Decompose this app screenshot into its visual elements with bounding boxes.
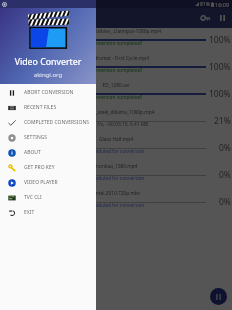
button[interactable] [0,0,232,310]
button[interactable]: ABOUT [0,145,96,160]
button[interactable]: GET PRO KEY [0,160,96,175]
button[interactable]: Amigos Invisibles_ Llamigos-1080p.mp4 [0,28,232,55]
staticText: tears_of_steel_dillama_1080p.mp4 [0,109,232,116]
staticText: 0% [219,196,231,208]
staticText: Scheduled for conversion [0,148,232,155]
staticText: GET PRO KEY [24,164,55,171]
staticText: ABORT CONVERSION [24,89,74,96]
staticText: RECENT FILES [24,104,57,111]
staticText: VIDEO PLAYER [24,179,58,186]
staticText: ED_1280.avi [0,82,232,89]
button[interactable]: ABORT CONVERSION [0,85,96,100]
button[interactable]: COMPLETED CONVERSIONS [0,115,96,130]
staticText: 100% [209,61,231,73]
staticText: 16:09 [215,1,230,8]
staticText: EXIT [24,209,35,216]
button[interactable]: monkaa_1080.mp4 [0,163,232,190]
button[interactable]: TVC CLI [0,190,96,205]
staticText: 0% [219,169,231,181]
staticText: Video Converter [0,56,96,68]
button[interactable]: Get pro key [196,8,214,28]
staticText: Sintel.2010.720p.mkv [0,190,232,197]
button[interactable]: VIDEO PLAYER [0,175,96,190]
button[interactable]: Laundromat - First Cycle.mp4 [0,55,232,82]
staticText: 0% [219,142,231,154]
staticText: COMPLETED CONVERSIONS [24,119,89,126]
button[interactable]: EXIT [0,205,96,220]
button[interactable]: RECENT FILES [0,100,96,115]
staticText: akingi.org [0,71,96,79]
staticText: 21% [214,115,231,127]
staticText: monkaa_1080.mp4 [0,163,232,170]
staticText: Conversion completed! [0,40,232,47]
staticText: 100% [209,88,231,100]
button[interactable]: SETTINGS [0,130,96,145]
staticText: Conversion completed! [0,67,232,74]
button[interactable]: tears_of_steel_dillama_1080p.mp4 [0,109,232,136]
button[interactable]: Pause conversion [214,8,230,28]
staticText: Glass Half.mp4 [0,136,232,143]
staticText: 81% [200,1,210,8]
staticText: Scheduled for conversion [0,202,232,209]
staticText: SETTINGS [24,134,48,141]
staticText: Laundromat - First Cycle.mp4 [0,55,232,62]
staticText: Scheduled for conversion [0,175,232,182]
staticText: Conversion completed! [0,94,232,101]
button[interactable]: Sintel.2010.720p.mkv [0,190,232,217]
staticText: 10.30 f/s, ~00:03:10, 6.41 MB [0,121,232,128]
button[interactable]: Pause all conversions [210,288,227,305]
staticText: TVC CLI [24,194,42,201]
staticText: 100% [209,34,231,46]
staticText: ABOUT [24,149,41,156]
button[interactable]: ED_1280.avi [0,82,232,109]
button[interactable]: Glass Half.mp4 [0,136,232,163]
staticText: Amigos Invisibles_ Llamigos-1080p.mp4 [0,28,232,35]
